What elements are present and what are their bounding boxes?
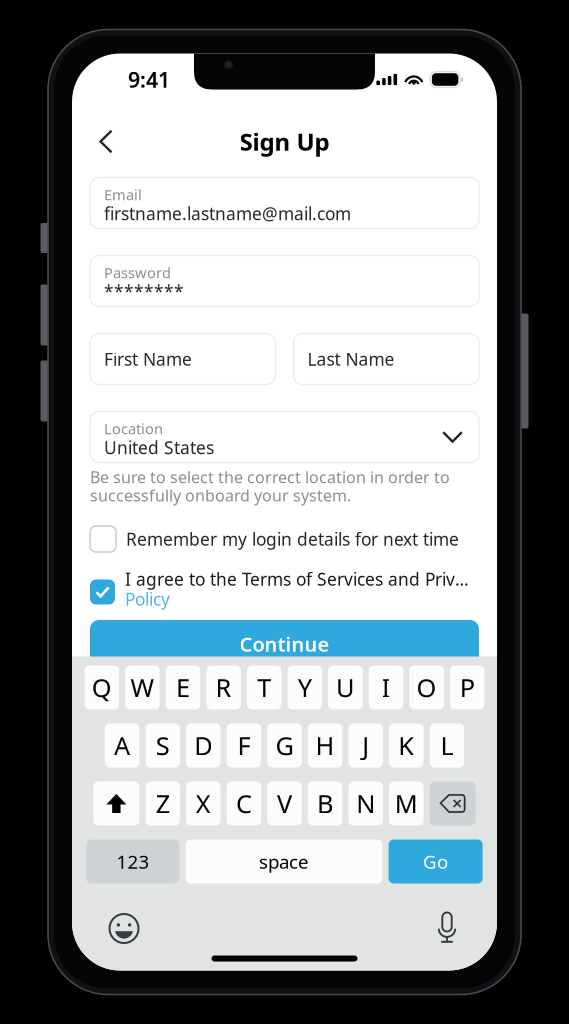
button[interactable]: Location [90, 411, 479, 462]
button[interactable]: Go [389, 839, 483, 883]
button[interactable]: Dictation [421, 906, 473, 950]
button[interactable]: Remember my login details for next time [90, 526, 459, 552]
staticText: Y [298, 671, 312, 704]
button[interactable]: Shift [93, 781, 139, 825]
button[interactable]: B [308, 781, 342, 825]
staticText: M [395, 787, 418, 820]
button[interactable]: V [267, 781, 302, 825]
button[interactable]: Email [90, 177, 479, 228]
staticText: 9:41 [128, 65, 170, 94]
button[interactable]: Delete [430, 781, 476, 825]
staticText: P [460, 671, 475, 704]
button[interactable]: G [267, 723, 302, 767]
button[interactable]: Y [288, 665, 322, 709]
staticText: D [194, 729, 212, 762]
staticText: I agree to the Terms of Services and Pri… [125, 567, 469, 590]
staticText: firstname.lastname@mail.com [104, 202, 351, 225]
button[interactable]: U [328, 665, 363, 709]
button[interactable]: E [166, 665, 200, 709]
staticText: Q [92, 671, 112, 704]
button[interactable]: S [145, 723, 180, 767]
staticText: Continue [239, 631, 329, 657]
button[interactable]: Emoji [98, 906, 150, 950]
button[interactable]: D [186, 723, 221, 767]
staticText: C [236, 787, 252, 820]
button[interactable]: M [389, 781, 423, 825]
staticText: Location [104, 419, 163, 438]
staticText: R [216, 671, 232, 704]
button[interactable]: C [227, 781, 261, 825]
button[interactable]: Q [85, 665, 119, 709]
staticText: Be sure to select the correct location i… [90, 466, 450, 506]
button[interactable]: Back [84, 119, 128, 163]
staticText: First Name [104, 347, 192, 370]
staticText: L [440, 729, 453, 762]
button[interactable]: T [247, 665, 281, 709]
staticText: S [156, 729, 170, 762]
button[interactable]: O [409, 665, 444, 709]
staticText: United States [104, 436, 214, 459]
staticText: J [362, 729, 369, 762]
staticText: K [398, 729, 414, 762]
button[interactable]: Password [90, 255, 479, 306]
staticText: G [275, 729, 293, 762]
button[interactable]: N [348, 781, 383, 825]
staticText: B [317, 787, 333, 820]
button[interactable]: First Name [90, 333, 275, 384]
button[interactable]: I agree to the Terms of Services and Pri… [90, 573, 115, 604]
button[interactable]: I [369, 665, 403, 709]
staticText: Last Name [307, 347, 394, 370]
staticText: N [356, 787, 375, 820]
button[interactable]: X [186, 781, 221, 825]
button[interactable]: space [185, 839, 382, 883]
button[interactable]: P [450, 665, 484, 709]
staticText: W [130, 671, 154, 704]
staticText: I [381, 671, 390, 704]
staticText: Password [104, 263, 171, 282]
button[interactable]: A [105, 723, 139, 767]
staticText: O [417, 671, 437, 704]
button[interactable]: L [430, 723, 464, 767]
staticText: E [176, 671, 190, 704]
staticText: Z [156, 787, 170, 820]
staticText: U [336, 671, 355, 704]
staticText: Policy [125, 587, 170, 610]
button[interactable]: R [206, 665, 241, 709]
staticText: space [259, 849, 309, 874]
staticText: A [114, 729, 130, 762]
button[interactable]: Continue [90, 620, 479, 668]
button[interactable]: F [227, 723, 261, 767]
staticText: X [196, 787, 211, 820]
button[interactable]: Last Name [293, 333, 479, 384]
button[interactable]: W [125, 665, 160, 709]
staticText: Go [423, 849, 448, 874]
staticText: T [257, 671, 271, 704]
staticText: 123 [116, 849, 149, 874]
button[interactable]: 123 [86, 839, 179, 883]
staticText: V [277, 787, 292, 820]
staticText: Sign Up [239, 126, 329, 157]
staticText: F [237, 729, 250, 762]
staticText: Email [104, 185, 142, 204]
button[interactable]: H [308, 723, 342, 767]
button[interactable]: K [389, 723, 423, 767]
button[interactable]: J [348, 723, 383, 767]
staticText: Remember my login details for next time [126, 527, 459, 550]
staticText: ******** [104, 280, 184, 303]
button[interactable]: Z [145, 781, 180, 825]
staticText: H [316, 729, 335, 762]
